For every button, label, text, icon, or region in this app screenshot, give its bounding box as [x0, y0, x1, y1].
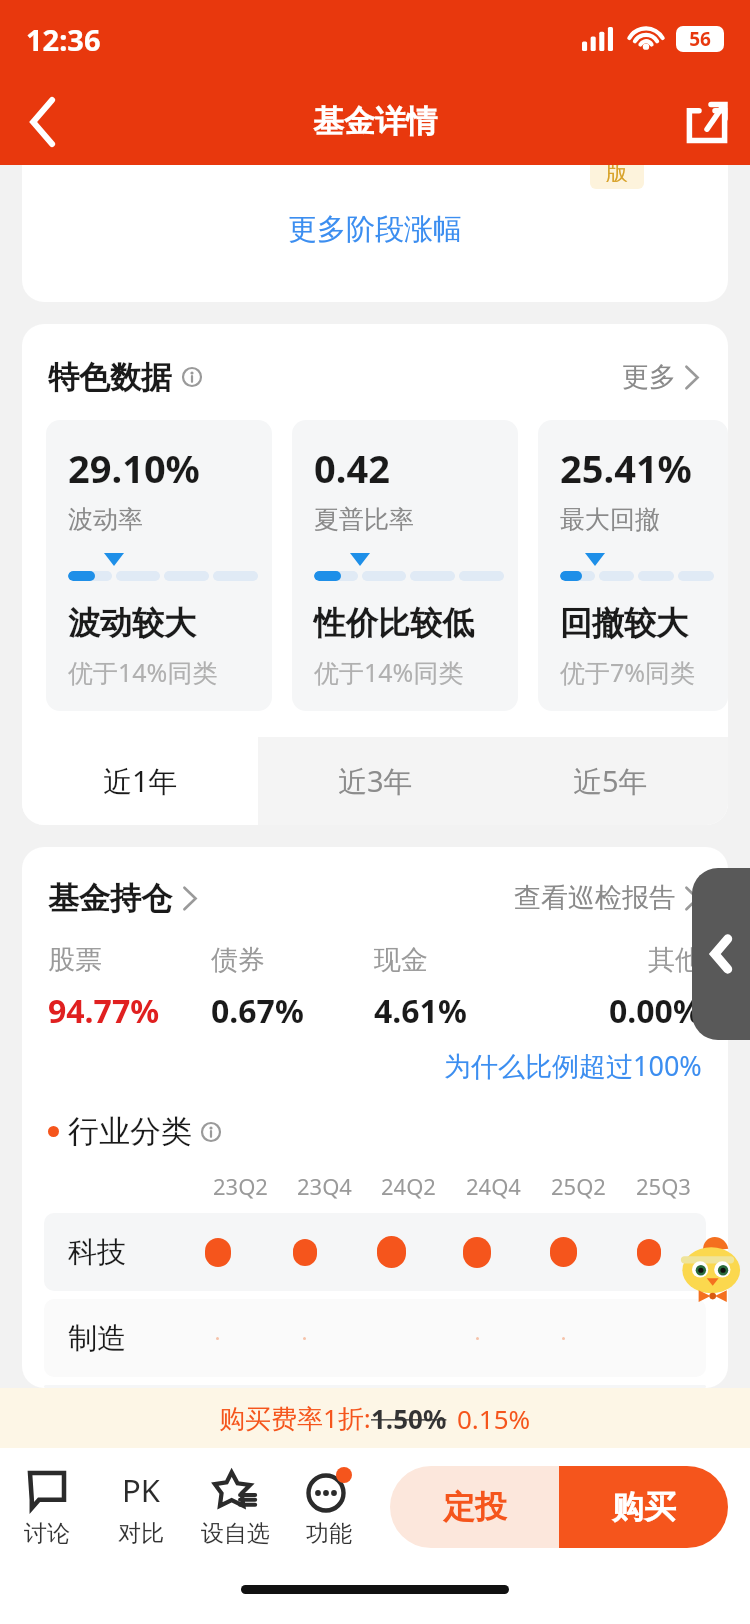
- staticText: 最大回撤: [560, 504, 660, 535]
- button[interactable]: Back: [0, 78, 86, 165]
- staticText: 0.67%: [211, 989, 304, 1033]
- staticText: 设自选: [201, 1519, 270, 1548]
- staticText: 其他: [648, 943, 702, 977]
- staticText: 23Q2: [213, 1171, 268, 1201]
- button[interactable]: 制造: [44, 1299, 706, 1377]
- staticText: 科技: [68, 1234, 126, 1271]
- button[interactable]: PK: [94, 1448, 188, 1566]
- staticText: 基金持仓: [48, 879, 172, 918]
- staticText: 波动率: [68, 504, 143, 535]
- staticText: PK: [122, 1469, 160, 1511]
- staticText: 查看巡检报告: [514, 881, 676, 915]
- button[interactable]: 功能: [282, 1448, 376, 1566]
- button[interactable]: 0.42: [292, 420, 518, 711]
- button[interactable]: Assistant: [672, 1231, 746, 1305]
- staticText: 94.77%: [48, 989, 160, 1033]
- staticText: 0.42: [314, 442, 390, 494]
- staticText: 性价比较低: [314, 603, 474, 643]
- staticText: 更多阶段涨幅: [288, 211, 462, 248]
- staticText: 近1年: [103, 761, 178, 801]
- button[interactable]: 设自选: [188, 1448, 282, 1566]
- staticText: 定投: [443, 1487, 507, 1527]
- button[interactable]: 购买: [559, 1466, 728, 1548]
- staticText: 购买: [612, 1487, 676, 1527]
- button[interactable]: 29.10%: [46, 420, 272, 711]
- staticText: 对比: [118, 1519, 164, 1548]
- button[interactable]: 更多阶段涨幅: [288, 211, 462, 248]
- staticText: 近3年: [338, 761, 413, 801]
- button[interactable]: Share: [664, 78, 750, 165]
- staticText: 更多: [622, 360, 676, 394]
- button[interactable]: 近5年: [493, 737, 728, 825]
- staticText: 0.00%: [609, 989, 702, 1033]
- staticText: 回撤较大: [560, 603, 688, 643]
- button[interactable]: 讨论: [0, 1448, 94, 1566]
- button[interactable]: 近3年: [258, 737, 493, 825]
- staticText: 优于14%同类: [314, 655, 464, 689]
- button[interactable]: 更多: [616, 354, 706, 400]
- staticText: 优于7%同类: [560, 655, 696, 689]
- staticText: 特色数据: [48, 358, 172, 397]
- staticText: 29.10%: [68, 442, 200, 494]
- button[interactable]: 定投: [390, 1466, 559, 1548]
- button[interactable]: Expand panel: [692, 868, 750, 1040]
- staticText: 讨论: [24, 1519, 70, 1548]
- staticText: 购买费率1折:: [219, 1400, 371, 1436]
- staticText: 夏普比率: [314, 504, 414, 535]
- button[interactable]: 近1年: [22, 737, 258, 825]
- staticText: 24Q2: [381, 1171, 436, 1201]
- button[interactable]: 25.41%: [538, 420, 728, 711]
- staticText: 波动较大: [68, 603, 196, 643]
- button[interactable]: 查看巡检报告: [508, 875, 706, 921]
- staticText: 12:36: [26, 20, 101, 59]
- staticText: 股票: [48, 943, 102, 977]
- staticText: 版: [606, 165, 628, 187]
- staticText: 25.41%: [560, 442, 692, 494]
- staticText: 近5年: [573, 761, 648, 801]
- staticText: 1.50%: [371, 1401, 447, 1436]
- staticText: 功能: [306, 1519, 352, 1548]
- button[interactable]: 科技: [44, 1213, 706, 1291]
- staticText: 基金详情: [313, 102, 437, 141]
- staticText: 4.61%: [374, 989, 467, 1033]
- staticText: 24Q4: [466, 1171, 521, 1201]
- button[interactable]: 为什么比例超过100%: [444, 1047, 702, 1084]
- staticText: 制造: [68, 1320, 126, 1357]
- staticText: 行业分类: [68, 1112, 192, 1151]
- staticText: 0.15%: [457, 1401, 531, 1436]
- staticText: 债券: [211, 943, 265, 977]
- staticText: 优于14%同类: [68, 655, 218, 689]
- staticText: 现金: [374, 943, 428, 977]
- staticText: 23Q4: [297, 1171, 352, 1201]
- button[interactable]: 基金持仓: [48, 879, 198, 918]
- staticText: 25Q2: [551, 1171, 606, 1201]
- staticText: 56: [689, 26, 711, 52]
- staticText: 25Q3: [636, 1171, 691, 1201]
